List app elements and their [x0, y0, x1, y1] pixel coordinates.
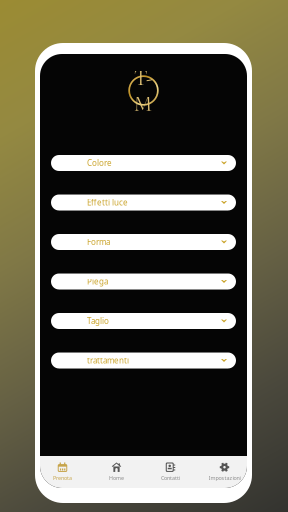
- staticText: TM: [134, 65, 153, 117]
- staticText: Forma: [87, 237, 110, 247]
- button[interactable]: Prenota: [35, 456, 89, 488]
- staticText: trattamenti: [87, 355, 129, 366]
- staticText: Contatti: [161, 474, 180, 482]
- staticText: Piega: [87, 276, 108, 287]
- button[interactable]: Impostazioni: [197, 456, 251, 488]
- button[interactable]: Forma: [51, 234, 236, 250]
- button[interactable]: Contatti: [143, 456, 197, 488]
- button[interactable]: Piega: [51, 273, 236, 289]
- button[interactable]: Colore: [51, 155, 236, 171]
- button[interactable]: Home: [89, 456, 143, 488]
- staticText: Home: [109, 474, 124, 482]
- staticText: Prenota: [53, 474, 72, 482]
- button[interactable]: Taglio: [51, 313, 236, 329]
- button[interactable]: Effetti luce: [51, 194, 236, 210]
- staticText: Effetti luce: [87, 197, 128, 208]
- button[interactable]: trattamenti: [51, 352, 236, 368]
- staticText: Colore: [87, 158, 112, 168]
- staticText: Impostazioni: [208, 474, 240, 482]
- staticText: Taglio: [87, 316, 109, 326]
